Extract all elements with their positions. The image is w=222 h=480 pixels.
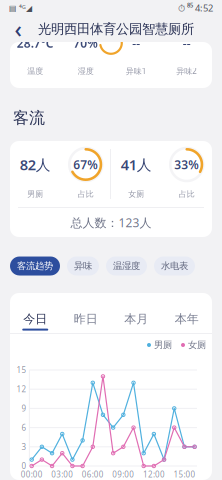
- staticText: 00:00: [21, 469, 43, 480]
- staticText: 82人: [20, 155, 51, 174]
- staticText: --: [132, 35, 140, 51]
- button[interactable]: 本年: [161, 293, 212, 327]
- staticText: 33%: [174, 156, 199, 172]
- staticText: 12:00: [143, 469, 165, 480]
- staticText: --: [183, 35, 191, 51]
- staticText: 本月: [124, 312, 148, 326]
- staticText: 异味1: [126, 66, 147, 76]
- staticText: 占比: [78, 189, 94, 199]
- button[interactable]: 异味: [67, 256, 99, 275]
- staticText: 41人: [121, 155, 152, 174]
- staticText: 异味2: [176, 66, 197, 76]
- staticText: 67%: [73, 156, 98, 172]
- staticText: 客流趋势: [17, 260, 53, 272]
- staticText: 03:00: [51, 469, 73, 480]
- staticText: ‹: [14, 14, 21, 44]
- staticText: 0: [21, 461, 26, 471]
- staticText: 男厕: [27, 189, 43, 199]
- staticText: 温湿度: [113, 260, 140, 272]
- staticText: 本年: [175, 312, 199, 326]
- button[interactable]: 温湿度: [106, 256, 147, 275]
- button[interactable]: 今日: [10, 293, 60, 327]
- staticText: 9: [21, 403, 26, 414]
- button[interactable]: 昨日: [60, 293, 111, 327]
- button[interactable]: 水电表: [154, 256, 195, 275]
- staticText: ⏱ ⁸⁵ 4:52: [178, 2, 213, 14]
- staticText: 28.7°C: [17, 35, 54, 51]
- staticText: 湿度: [78, 66, 94, 76]
- staticText: 70%: [73, 35, 98, 51]
- staticText: 15: [16, 365, 26, 375]
- staticText: 温度: [27, 66, 43, 76]
- staticText: 总人数：123人: [70, 214, 151, 230]
- staticText: 女厕: [128, 189, 144, 199]
- staticText: ▤ ⁴ᴳ◢: [9, 3, 32, 13]
- staticText: 女厕: [188, 339, 206, 351]
- staticText: 客流: [13, 108, 45, 128]
- staticText: 6: [21, 422, 26, 433]
- staticText: 异味: [74, 260, 92, 272]
- staticText: 今日: [23, 312, 47, 326]
- staticText: 15:00: [173, 469, 195, 480]
- staticText: 光明西田体育公园智慧厕所: [38, 21, 194, 37]
- button[interactable]: 本月: [111, 293, 161, 327]
- staticText: 水电表: [161, 260, 188, 272]
- button[interactable]: 客流趋势: [10, 256, 60, 275]
- staticText: 占比: [179, 189, 195, 199]
- staticText: 男厕: [154, 339, 172, 351]
- staticText: 06:00: [82, 469, 104, 480]
- staticText: 昨日: [74, 312, 98, 326]
- button[interactable]: Back: [6, 16, 30, 42]
- staticText: 12: [16, 384, 26, 394]
- staticText: 09:00: [112, 469, 134, 480]
- staticText: 3: [21, 441, 26, 452]
